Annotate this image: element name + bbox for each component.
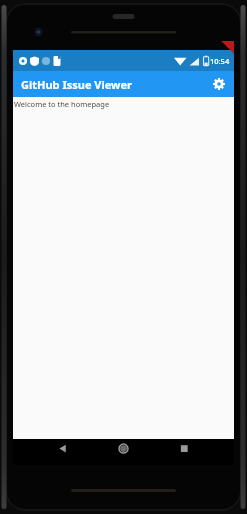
button[interactable]: Settings	[208, 73, 230, 95]
staticText: 10:54	[210, 56, 230, 66]
staticText: Welcome to the homepage	[14, 99, 110, 109]
staticText: GitHub Issue Viewer	[21, 77, 132, 92]
